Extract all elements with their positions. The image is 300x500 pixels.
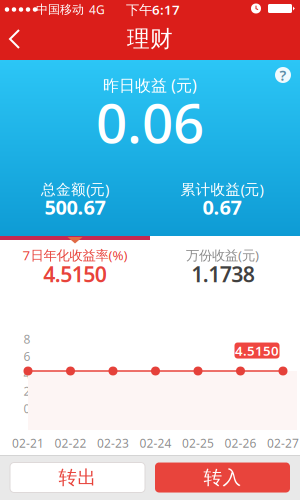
button[interactable]: 万份收益(元) [150, 244, 300, 301]
staticText: 8 [23, 331, 30, 347]
staticText: 累计收益(元) [180, 179, 263, 199]
staticText: 2 [23, 383, 30, 399]
staticText: 转入 [203, 466, 241, 489]
staticText: 1.1738 [191, 260, 255, 288]
staticText: 0 [23, 401, 30, 416]
staticText: 02-21 [12, 435, 44, 451]
staticText: 0.06 [96, 86, 204, 158]
staticText: 6 [23, 348, 30, 364]
staticText: 02-22 [54, 435, 86, 451]
staticText: 4.5150 [235, 342, 279, 359]
button[interactable] [0, 24, 30, 54]
staticText: 7日年化收益率(%) [22, 246, 127, 264]
button[interactable]: ? [273, 65, 293, 85]
staticText: 02-24 [139, 435, 171, 451]
staticText: 转出 [58, 466, 96, 489]
staticText: 02-26 [224, 435, 256, 451]
staticText: 02-27 [267, 435, 299, 451]
staticText: 4.5150 [43, 260, 107, 288]
staticText: 下午6:17 [126, 1, 180, 18]
staticText: 中国移动 [36, 2, 84, 17]
staticText: 4 [23, 366, 30, 382]
staticText: 02-25 [182, 435, 214, 451]
staticText: 万份收益(元) [186, 246, 259, 264]
staticText: 总金额(元) [41, 179, 109, 199]
staticText: 昨日收益 (元) [103, 74, 197, 96]
button[interactable]: 转入 [155, 462, 290, 492]
button[interactable]: 转出 [10, 462, 145, 492]
staticText: 4G [89, 1, 105, 17]
staticText: 500.67 [44, 194, 105, 220]
staticText: 0.67 [202, 194, 241, 220]
staticText: ? [279, 65, 286, 85]
staticText: 理财 [127, 25, 173, 53]
staticText: 02-23 [97, 435, 129, 451]
button[interactable]: 7日年化收益率(%) [0, 244, 150, 301]
